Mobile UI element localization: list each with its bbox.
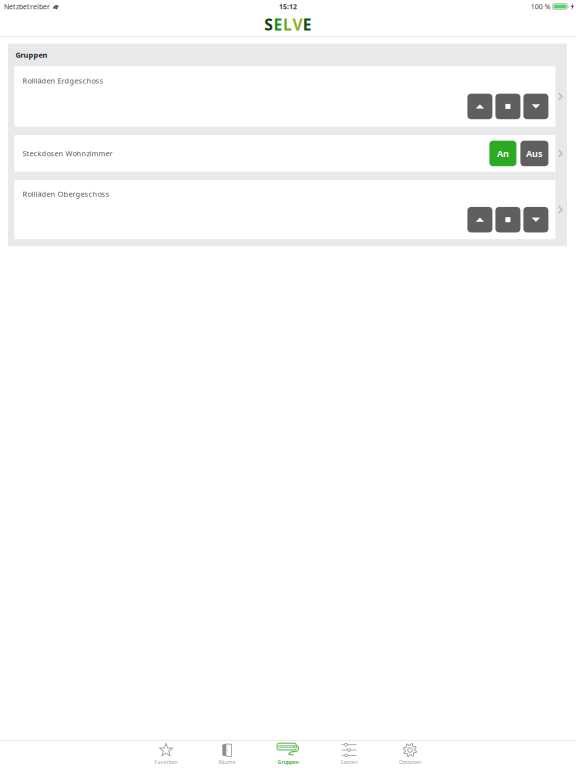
button[interactable]: Ab [523, 94, 548, 119]
staticText: Szenen [340, 759, 357, 766]
button[interactable]: Rollläden Obergeschoss [14, 180, 555, 239]
staticText: Gruppen [15, 50, 47, 60]
button[interactable]: Ab [523, 207, 548, 232]
staticText: Aus [526, 147, 543, 160]
staticText: Steckdosen Wohnzimmer [22, 148, 112, 158]
button[interactable]: Favoriten [135, 741, 196, 767]
staticText: E [303, 14, 312, 35]
button[interactable]: Szenen [318, 741, 379, 767]
button[interactable]: Auf [467, 94, 492, 119]
staticText: V [292, 14, 302, 35]
button[interactable]: An [489, 141, 516, 166]
staticText: Rollläden Erdgeschoss [22, 76, 103, 86]
staticText: E [274, 14, 283, 35]
staticText: Gruppen [277, 759, 298, 766]
staticText: Netzbetreiber [4, 2, 50, 11]
button[interactable]: Rollläden Erdgeschoss [14, 66, 555, 127]
staticText: An [497, 147, 509, 160]
button[interactable]: Steckdosen Wohnzimmer [14, 135, 555, 172]
staticText: L [283, 14, 292, 35]
staticText: Räume [218, 759, 235, 766]
button[interactable]: Auf [467, 207, 492, 232]
button[interactable]: Aus [520, 141, 548, 166]
staticText: Rollläden Obergeschoss [22, 189, 109, 199]
staticText: Optionen [399, 759, 421, 766]
staticText: S [264, 14, 273, 35]
button[interactable]: Stopp [495, 94, 520, 119]
button[interactable]: Räume [196, 741, 257, 767]
button[interactable]: Stopp [495, 207, 520, 232]
staticText: 15:12 [279, 2, 297, 11]
button[interactable]: Optionen [379, 741, 440, 767]
staticText: Favoriten [154, 759, 177, 766]
button[interactable]: Gruppen [257, 741, 318, 767]
staticText: 100 % [531, 2, 551, 11]
